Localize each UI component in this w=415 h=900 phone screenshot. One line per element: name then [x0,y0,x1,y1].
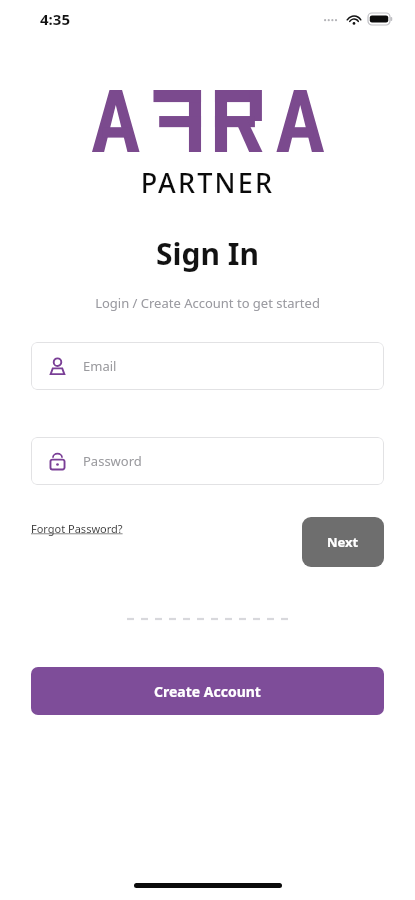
staticText: Create Account [154,682,261,701]
button[interactable]: Email [31,342,384,390]
button[interactable]: Forgot Password? [31,519,123,538]
staticText: Login / Create Account to get started [0,294,415,312]
staticText: 4:35 [40,9,70,29]
staticText: Sign In [0,233,415,274]
button[interactable]: Create Account [31,667,384,715]
button[interactable]: Password [31,437,384,485]
staticText: Next [327,533,359,551]
staticText: PARTNER [0,164,415,201]
button[interactable]: Next [302,517,384,567]
staticText: Forgot Password? [31,521,123,536]
staticText: Email [83,357,117,375]
staticText: Password [83,452,142,470]
